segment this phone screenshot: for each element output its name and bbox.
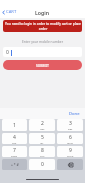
staticText: SUBMIT [36,63,49,68]
staticText: ABC [40,127,45,130]
staticText: 2 [41,120,44,127]
staticText: 1 [13,122,16,129]
staticText: TUV [40,154,45,157]
button[interactable]: 0 [3,47,82,57]
staticText: MNO [67,141,73,144]
button[interactable]: 6 [57,133,83,144]
staticText: GHI [12,141,17,144]
button[interactable]: Done [69,108,80,119]
button[interactable]: 9 [57,146,83,157]
button[interactable]: 2 [29,119,55,131]
button[interactable]: 4 [2,133,27,144]
button[interactable]: Delete [57,159,83,170]
button[interactable]: 7 [2,146,27,157]
staticText: 0 [6,49,9,56]
staticText: + * # [11,162,19,167]
staticText: Done [69,111,80,117]
staticText: 4 [13,134,16,141]
button[interactable]: 5 [29,133,55,144]
button[interactable]: + * # [2,159,27,170]
staticText: You need to login in order to modify car… [5,21,81,31]
staticText: CART [6,9,17,15]
staticText: JKL [40,141,44,144]
button[interactable]: 8 [29,146,55,157]
button[interactable]: SUBMIT [3,60,82,70]
staticText: WXYZ [67,154,74,157]
staticText: PQRS [11,154,18,157]
staticText: 7 [13,147,16,154]
button[interactable]: CART [1,9,17,15]
staticText: Enter your mobile number [0,39,85,43]
staticText: 9 [69,147,72,154]
staticText: 0 [41,161,44,168]
button[interactable]: 3 [57,119,83,131]
staticText: Login [35,9,50,16]
staticText: 5 [41,134,44,141]
staticText: DEF [68,127,73,130]
button[interactable]: 0 [29,159,55,170]
button[interactable]: 1 [2,119,27,131]
staticText: 8 [41,147,44,154]
staticText: 3 [69,120,72,127]
staticText: 6 [69,134,72,141]
